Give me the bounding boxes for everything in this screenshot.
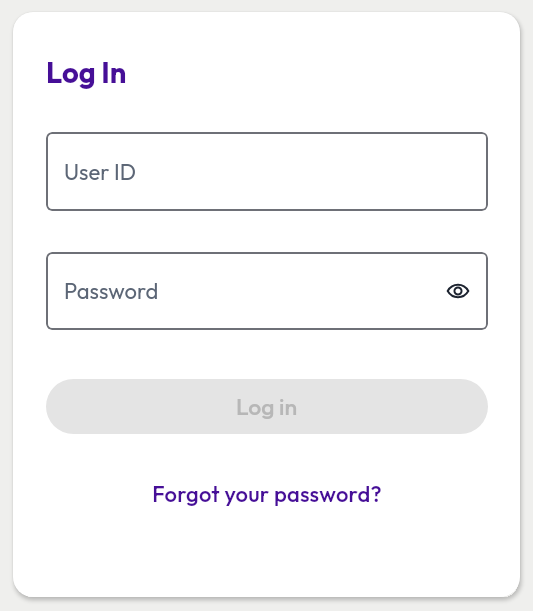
button[interactable]: User ID <box>46 132 488 211</box>
staticText: Log In <box>46 54 127 91</box>
button[interactable]: Forgot your password? <box>142 474 392 514</box>
button[interactable]: Log in <box>46 379 488 434</box>
staticText: Log in <box>236 392 298 421</box>
button[interactable]: Password <box>46 252 488 330</box>
button[interactable]: Show password <box>438 271 478 311</box>
staticText: User ID <box>64 158 136 186</box>
staticText: Password <box>64 277 159 305</box>
